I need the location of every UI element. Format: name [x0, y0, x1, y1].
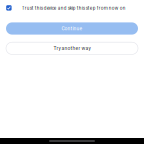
button[interactable]: Continue: [6, 22, 138, 35]
staticText: Continue: [61, 25, 82, 32]
button[interactable]: Try another way: [6, 42, 138, 54]
staticText: Try another way: [53, 45, 90, 51]
staticText: Trust this device and skip this step fro…: [22, 5, 126, 11]
button[interactable]: Trust this device: [4, 3, 13, 12]
